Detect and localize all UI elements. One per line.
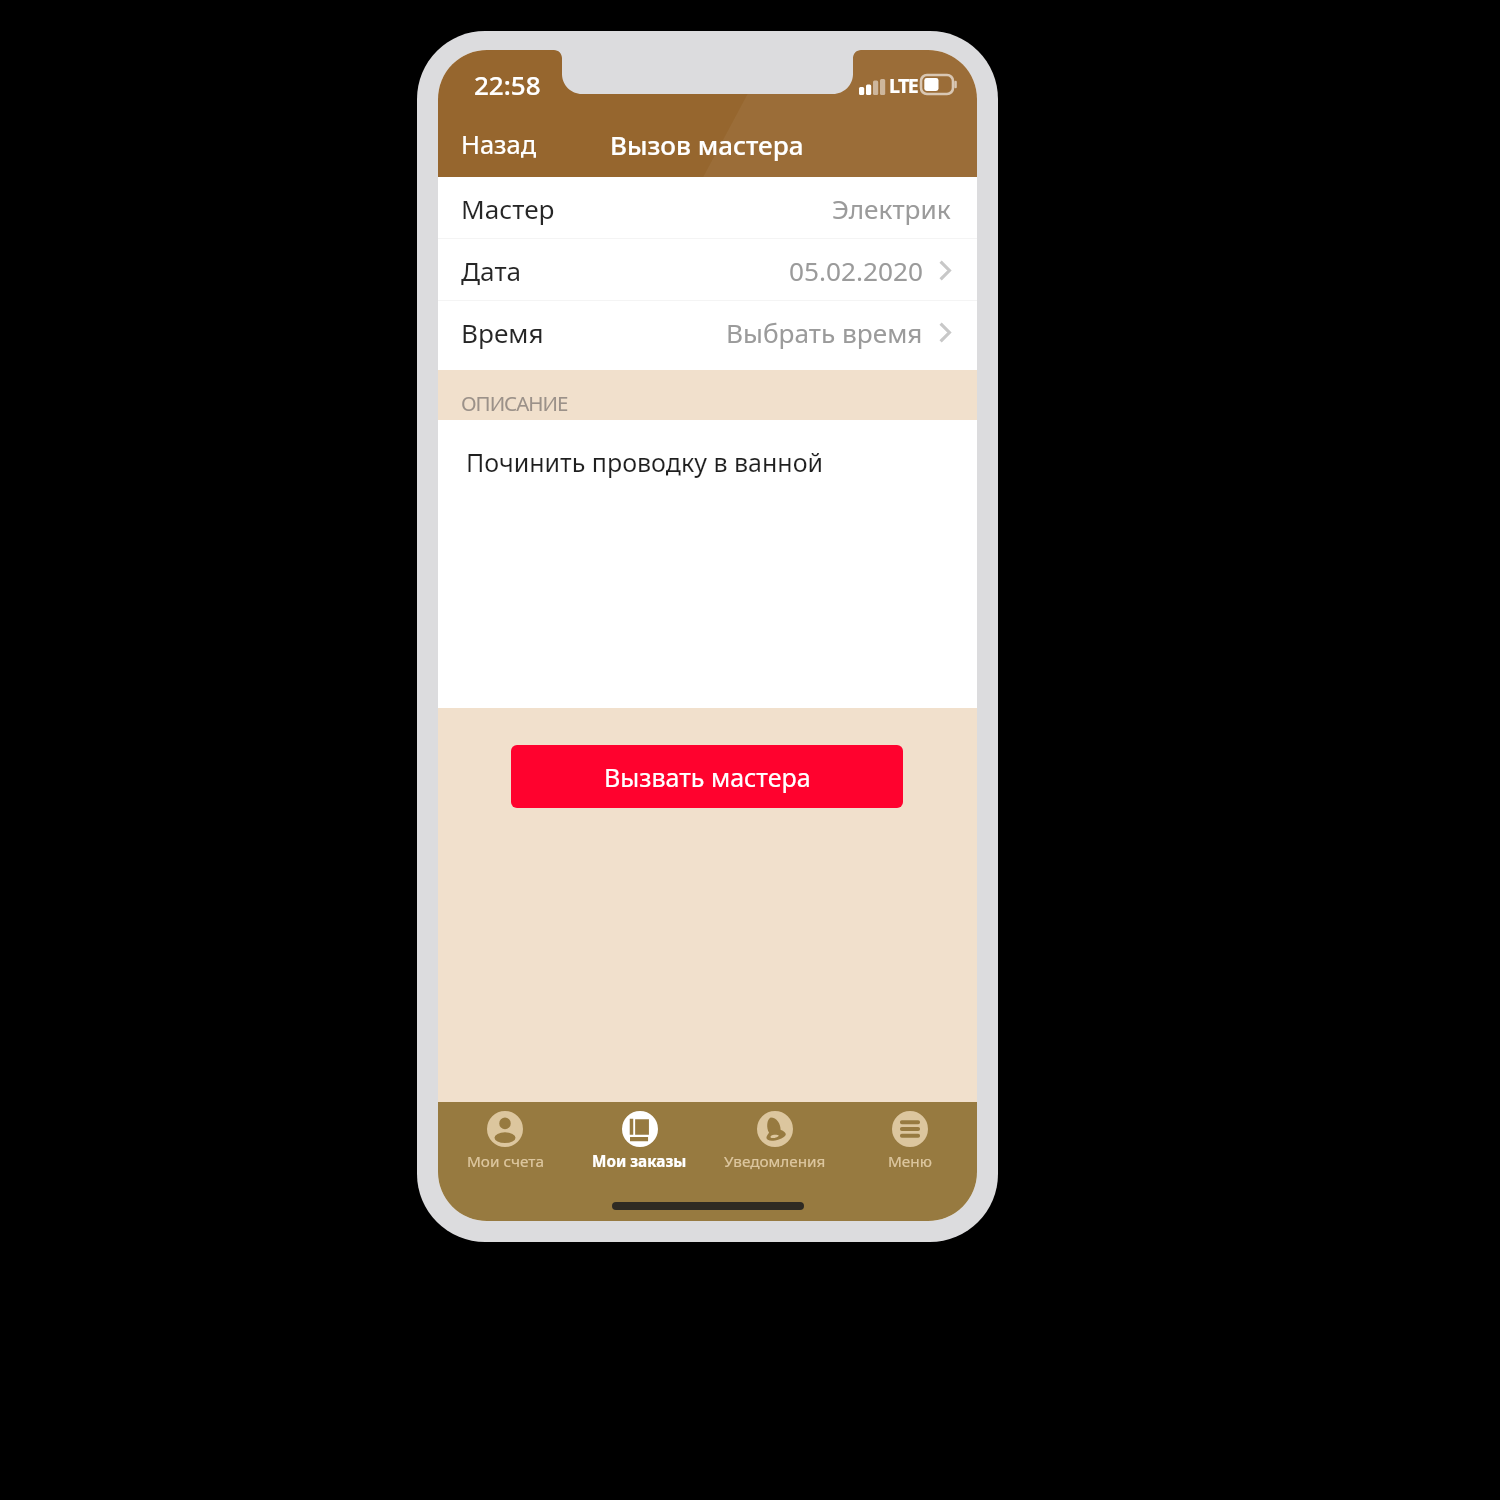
staticText: Электрик [832, 191, 951, 227]
staticText: 05.02.2020 [789, 253, 923, 289]
staticText: 22:58 [474, 67, 541, 102]
button[interactable]: Menu [842, 1102, 977, 1174]
staticText: Дата [461, 253, 522, 289]
staticText: Мастер [461, 191, 555, 227]
staticText: Починить проводку в ванной [466, 445, 824, 479]
button[interactable]: Вызвать мастера [511, 745, 903, 808]
button[interactable]: Мастер [438, 177, 977, 238]
button[interactable]: My orders [572, 1102, 707, 1174]
staticText: Вызвать мастера [604, 760, 811, 794]
button[interactable]: Дата [438, 239, 977, 300]
button[interactable]: Время [438, 301, 977, 362]
staticText: Вызов мастера [610, 127, 804, 162]
button[interactable]: Назад [438, 110, 560, 173]
staticText: LTE [889, 72, 918, 99]
staticText: Мои заказы [592, 1151, 687, 1172]
staticText: Время [461, 315, 544, 351]
staticText: Выбрать время [726, 315, 923, 351]
staticText: Меню [888, 1151, 932, 1172]
button[interactable]: My accounts [438, 1102, 572, 1174]
button[interactable]: Notifications [707, 1102, 842, 1174]
staticText: Уведомления [724, 1151, 826, 1172]
staticText: Назад [461, 127, 537, 162]
staticText: ОПИСАНИЕ [461, 389, 568, 417]
staticText: Мои счета [467, 1151, 544, 1172]
